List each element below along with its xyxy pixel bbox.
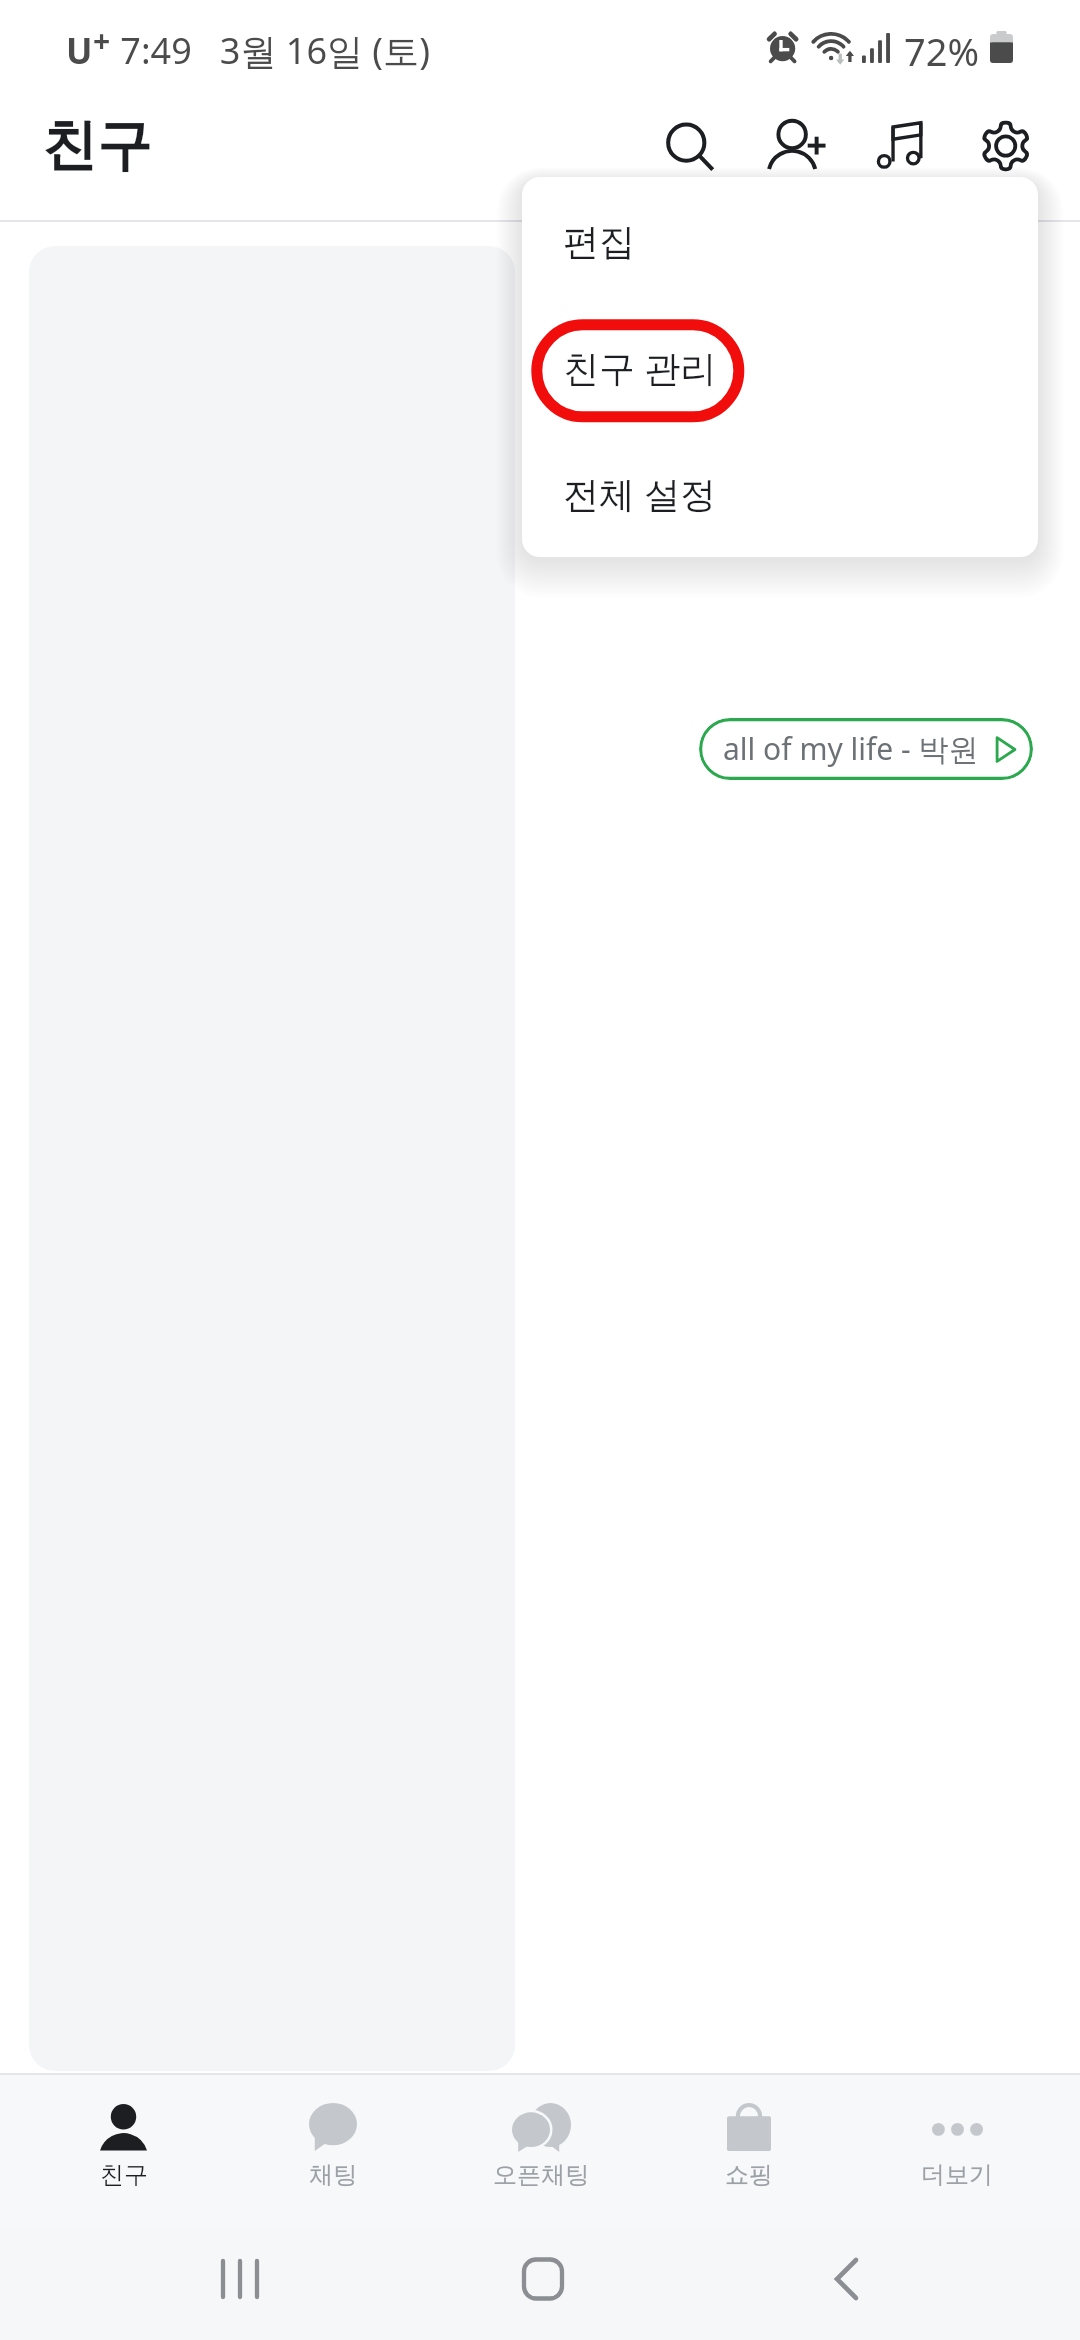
- staticText: 친구: [100, 2160, 148, 2190]
- staticText: 7:49 3월 16일 (토): [111, 26, 430, 75]
- staticText: 전체 설정: [563, 469, 717, 518]
- button[interactable]: 전체 설정: [522, 430, 1038, 556]
- button[interactable]: 채팅: [228, 2072, 437, 2225]
- button[interactable]: Back: [786, 2222, 906, 2336]
- button[interactable]: Search: [646, 104, 726, 184]
- staticText: 친구: [42, 111, 152, 180]
- staticText: 쇼핑: [725, 2160, 773, 2190]
- button[interactable]: 쇼핑: [645, 2072, 853, 2225]
- staticText: all of my life - 박원: [723, 728, 979, 769]
- button[interactable]: Now playing: all of my life - 박원: [699, 718, 1033, 780]
- button[interactable]: 친구: [19, 2072, 228, 2225]
- button[interactable]: Music: [858, 104, 938, 184]
- button[interactable]: Add friend: [752, 104, 832, 184]
- staticText: 오픈채팅: [493, 2160, 589, 2190]
- button[interactable]: Settings: [965, 104, 1045, 184]
- staticText: 채팅: [309, 2160, 357, 2190]
- button[interactable]: 편집: [522, 178, 1038, 304]
- staticText: 친구 관리: [563, 343, 717, 392]
- button[interactable]: 더보기: [853, 2072, 1061, 2225]
- button[interactable]: 오픈채팅: [437, 2072, 645, 2225]
- staticText: +: [93, 20, 111, 61]
- staticText: 더보기: [921, 2160, 993, 2190]
- button[interactable]: Home: [483, 2222, 603, 2336]
- button[interactable]: 친구 관리: [522, 304, 1038, 430]
- staticText: U: [66, 27, 93, 75]
- button[interactable]: Recents: [180, 2222, 300, 2336]
- staticText: 편집: [563, 219, 635, 264]
- staticText: 72%: [904, 25, 980, 77]
